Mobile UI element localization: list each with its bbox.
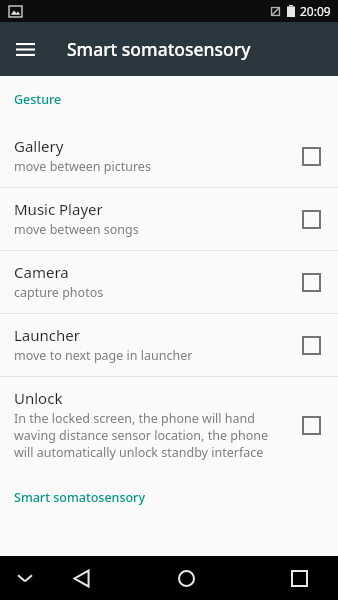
staticText: Gesture: [14, 91, 62, 108]
staticText: move between songs: [14, 221, 139, 238]
staticText: capture photos: [14, 284, 104, 301]
staticText: 20:09: [300, 3, 331, 19]
button[interactable]: Music Player toggle: [298, 206, 324, 232]
staticText: In the locked screen, the phone will han…: [14, 410, 255, 427]
button[interactable]: Launcher toggle: [298, 332, 324, 358]
button[interactable]: Home: [112, 556, 260, 600]
staticText: move between pictures: [14, 158, 151, 175]
staticText: will automatically unlock standby interf…: [14, 444, 264, 461]
button[interactable]: Gallery: [0, 125, 338, 187]
staticText: Unlock: [14, 388, 63, 408]
button[interactable]: Open navigation menu: [5, 29, 45, 69]
staticText: move to next page in launcher: [14, 347, 193, 364]
button[interactable]: Unlock toggle: [298, 412, 324, 438]
staticText: Launcher: [14, 325, 80, 345]
staticText: Music Player: [14, 199, 103, 219]
button[interactable]: Unlock: [0, 377, 338, 473]
button[interactable]: Camera toggle: [298, 269, 324, 295]
button[interactable]: Gallery toggle: [298, 143, 324, 169]
button[interactable]: Hide keyboard: [0, 556, 50, 600]
button[interactable]: Recent apps: [260, 556, 338, 600]
staticText: waving distance sensor location, the pho…: [14, 427, 268, 444]
staticText: Smart somatosensory: [14, 489, 146, 506]
button[interactable]: Launcher: [0, 314, 338, 376]
button[interactable]: Camera: [0, 251, 338, 313]
staticText: Gallery: [14, 136, 64, 156]
staticText: Camera: [14, 262, 69, 282]
button[interactable]: Smart somatosensory: [0, 485, 338, 514]
button[interactable]: Back: [50, 556, 112, 600]
staticText: Smart somatosensory: [67, 37, 251, 61]
button[interactable]: Music Player: [0, 188, 338, 250]
